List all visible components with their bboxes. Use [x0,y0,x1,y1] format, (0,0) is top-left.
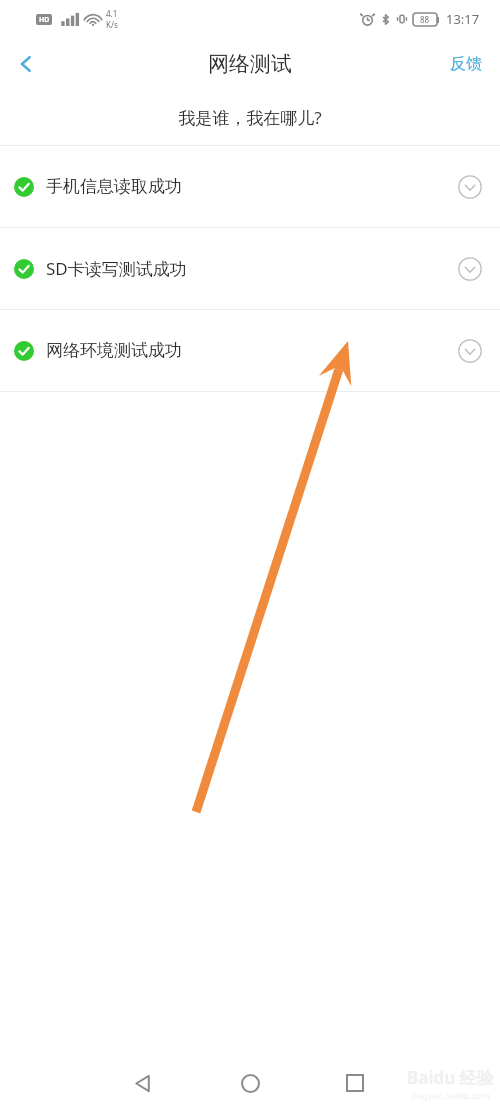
staticText: jingyan.baidu.com [412,1089,490,1101]
staticText: 88 [420,14,430,25]
button[interactable]: 手机信息读取成功 [0,146,500,227]
button[interactable]: 网络环境测试成功 [0,310,500,391]
staticText: 网络环境测试成功 [46,340,182,361]
staticText: 反馈 [450,54,482,74]
staticText: 网络测试 [208,51,292,77]
button[interactable]: SD卡读写测试成功 [0,228,500,309]
staticText: 13:17 [446,10,480,28]
staticText: 手机信息读取成功 [46,176,182,197]
button[interactable]: Back [0,38,52,90]
button[interactable]: Back [118,1058,168,1108]
button[interactable]: 反馈 [432,38,500,90]
staticText: K/s [106,19,118,30]
staticText: 我是谁，我在哪儿? [178,106,322,129]
button[interactable]: Recent apps [330,1058,380,1108]
button[interactable]: Home [225,1058,275,1108]
staticText: 4.1 [106,8,118,19]
staticText: Baidu 经验 [407,1066,494,1089]
staticText: SD卡读写测试成功 [46,257,187,280]
staticText: HD [39,15,50,25]
